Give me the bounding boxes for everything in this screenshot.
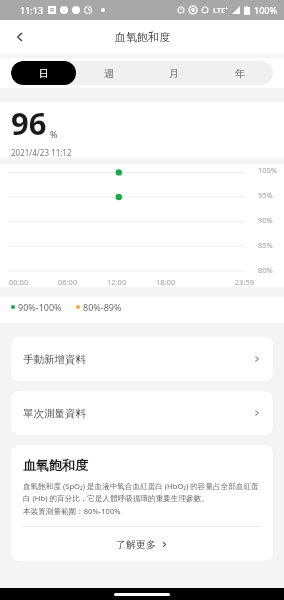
staticText: 85% [258,240,273,250]
button[interactable]: 單次測量資料 [11,391,273,435]
staticText: 血氧飽和度 (SpO₂) 是血液中氧合血紅蛋白 (HbO₂) 的容量占全部血紅蛋… [23,481,261,504]
button[interactable]: Back [6,23,34,51]
staticText: 手動新增資料 [23,353,253,366]
button[interactable]: 日 [11,61,76,85]
staticText: 週 [104,67,114,80]
staticText: % [50,128,58,140]
staticText: 2021/4/23 11:12 [11,147,72,158]
staticText: 日 [39,67,49,80]
button[interactable]: 了解更多 [23,527,261,561]
staticText: 單次測量資料 [23,407,253,420]
staticText: 80%-89% [83,301,122,313]
staticText: 18:00 [156,277,205,287]
staticText: 100% [254,4,278,16]
staticText: 23:59 [205,277,254,287]
staticText: 90% [258,215,273,225]
staticText: 血氧飽和度 [23,457,88,473]
staticText: 00:00 [9,277,58,287]
staticText: 06:00 [58,277,107,287]
button[interactable]: 月 [141,61,207,85]
staticText: 11:13 [20,4,44,16]
staticText: 80% [258,265,273,275]
staticText: 年 [235,67,245,80]
staticText: 本裝置測量範圍：80%-100% [23,506,121,516]
button[interactable]: 手動新增資料 [11,337,273,381]
staticText: 月 [169,67,179,80]
button[interactable]: 週 [76,61,141,85]
button[interactable]: 年 [207,61,273,85]
staticText: 96 [11,102,47,144]
staticText: 了解更多 [116,538,156,551]
staticText: 90%-100% [18,301,62,313]
staticText: 血氧飽和度 [115,30,170,44]
staticText: 100% [258,165,278,175]
staticText: 12:00 [107,277,156,287]
staticText: LTE⁺ [213,5,228,15]
staticText: 95% [258,190,273,200]
